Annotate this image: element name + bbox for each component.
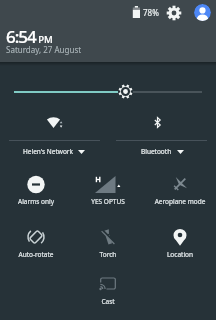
button[interactable]: [194, 4, 211, 21]
button[interactable]: Bluetooth: [108, 146, 216, 157]
staticText: YES OPTUS: [72, 197, 144, 206]
staticText: Alarms only: [0, 197, 72, 206]
button[interactable]: Helen's Network: [0, 146, 108, 157]
staticText: 78%: [143, 7, 159, 18]
button[interactable]: [165, 4, 183, 22]
staticText: Helen's Network: [23, 147, 73, 156]
button[interactable]: Aeroplane mode: [144, 175, 216, 206]
button[interactable]: Alarms only: [0, 175, 72, 206]
button[interactable]: Auto-rotate: [0, 228, 72, 259]
button[interactable]: [20, 110, 90, 138]
button[interactable]: YES OPTUS: [72, 175, 144, 206]
staticText: Cast: [72, 297, 144, 306]
button[interactable]: Cast: [72, 277, 144, 306]
button[interactable]: Location: [144, 228, 216, 259]
staticText: Bluetooth: [141, 147, 172, 156]
button[interactable]: [0, 78, 216, 106]
staticText: Saturday, 27 August: [6, 44, 82, 55]
staticText: Aeroplane mode: [144, 197, 216, 206]
button[interactable]: [126, 110, 196, 138]
staticText: Torch: [72, 250, 144, 259]
staticText: 6:54 PM: [6, 25, 53, 48]
staticText: Auto-rotate: [0, 250, 72, 259]
staticText: Location: [144, 250, 216, 259]
button[interactable]: Torch: [72, 228, 144, 259]
